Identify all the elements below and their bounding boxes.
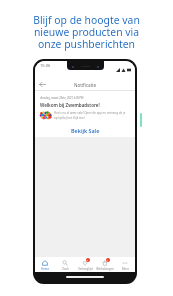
staticText: 15:06 — [40, 63, 51, 68]
button[interactable]: Back — [39, 81, 46, 88]
staticText: Blijf op de hoogte van nieuwe producten … — [33, 13, 140, 51]
button[interactable]: Zoek — [55, 260, 75, 271]
staticText: Meer — [122, 267, 129, 271]
button[interactable]: Meer — [115, 260, 135, 271]
staticText: dinsdag, maart 23ste, 2021 4:05 PM — [40, 96, 84, 100]
staticText: Welkom bij Zwembadstore! — [40, 102, 100, 108]
button[interactable]: 1 — [75, 260, 95, 271]
staticText: Zoek — [62, 267, 69, 271]
staticText: 1 — [87, 259, 89, 262]
staticText: Het is nu al weer sale! Open de app en o… — [54, 111, 126, 120]
staticText: Notificatie — [74, 82, 97, 88]
button[interactable]: Bekijk Sale — [40, 127, 130, 134]
button[interactable]: Home — [35, 260, 55, 271]
staticText: Verlanglijst — [78, 267, 93, 271]
staticText: Home — [41, 267, 49, 271]
staticText: Winkelwagen — [96, 267, 114, 271]
staticText: Bekijk Sale — [71, 127, 100, 134]
button[interactable]: 1 — [95, 260, 115, 271]
staticText: 1 — [107, 259, 109, 262]
